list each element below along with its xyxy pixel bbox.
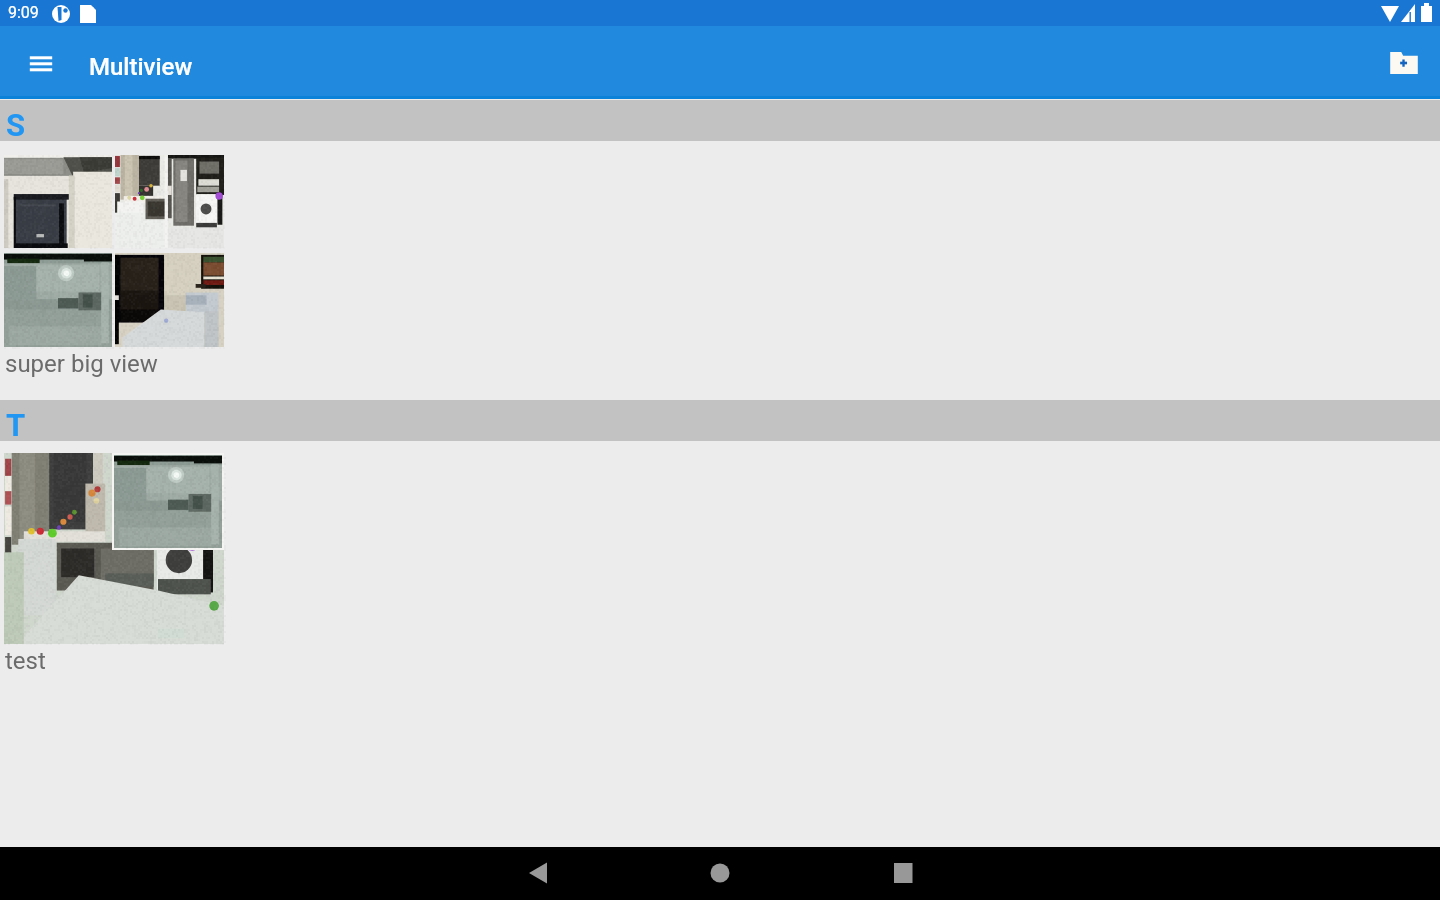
button[interactable]: S bbox=[0, 100, 1440, 141]
button[interactable]: Create new group bbox=[1380, 39, 1428, 87]
button[interactable]: Recent apps bbox=[879, 847, 927, 900]
button[interactable]: Back bbox=[514, 847, 562, 900]
staticText: super big view bbox=[5, 350, 158, 378]
staticText: T bbox=[6, 407, 26, 443]
staticText: 9:09 bbox=[8, 3, 39, 22]
staticText: test bbox=[5, 647, 46, 675]
button[interactable]: T bbox=[0, 400, 1440, 441]
button[interactable]: super big view bbox=[0, 141, 1440, 386]
staticText: S bbox=[6, 107, 26, 143]
button[interactable]: Open navigation drawer bbox=[17, 39, 65, 87]
button[interactable]: Home bbox=[696, 847, 744, 900]
button[interactable]: test bbox=[0, 441, 1440, 683]
staticText: Multiview bbox=[89, 53, 193, 81]
